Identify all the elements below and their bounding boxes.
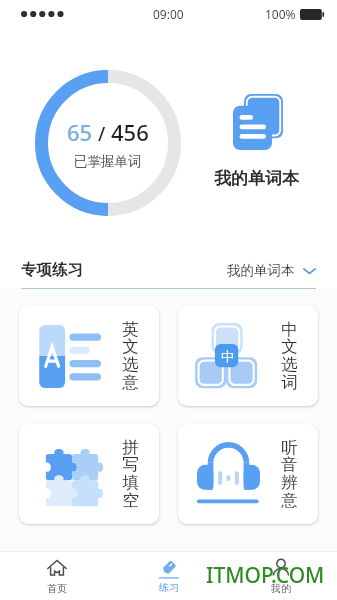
staticText: 456: [111, 117, 149, 147]
button[interactable]: 首页: [0, 552, 113, 600]
staticText: 中 文 选 词: [281, 319, 298, 393]
staticText: 09:00: [153, 6, 184, 22]
staticText: 65: [67, 117, 93, 147]
staticText: 已掌握单词: [74, 153, 142, 170]
button[interactable]: 英 文 选 意: [19, 306, 159, 406]
staticText: 听 音 辨 意: [281, 437, 298, 511]
button[interactable]: 拼 写 填 空: [19, 424, 159, 524]
staticText: /: [93, 121, 111, 147]
staticText: 练习: [159, 581, 179, 594]
staticText: ITMOP.COM: [206, 561, 325, 590]
button[interactable]: 听 音 辨 意: [178, 424, 318, 524]
staticText: 首页: [47, 582, 67, 595]
button[interactable]: 我的单词本: [227, 262, 316, 279]
other: 我的单词本: [233, 94, 283, 150]
button[interactable]: 我的: [225, 552, 337, 600]
staticText: 100%: [265, 6, 296, 22]
staticText: 我的: [271, 582, 291, 595]
staticText: 我的单词本: [227, 262, 295, 279]
button[interactable]: 中: [178, 306, 318, 406]
staticText: 专项练习: [21, 260, 83, 280]
button[interactable]: 练习: [113, 552, 225, 600]
staticText: 英 文 选 意: [122, 319, 139, 393]
button[interactable]: 我的单词本: [201, 94, 312, 189]
staticText: 拼 写 填 空: [122, 437, 139, 511]
staticText: 中: [221, 348, 234, 364]
staticText: 我的单词本: [214, 168, 299, 189]
